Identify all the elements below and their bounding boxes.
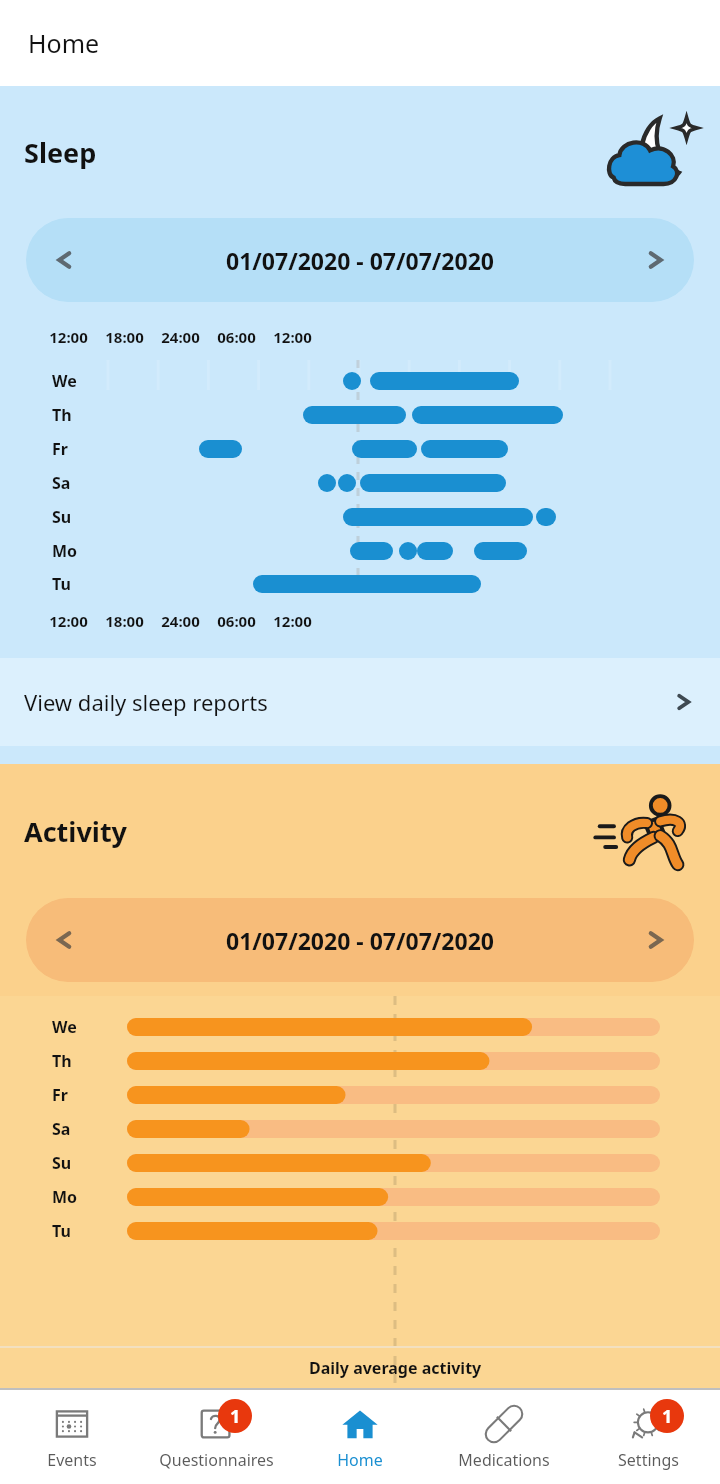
staticText: Mo: [52, 540, 78, 562]
staticText: Daily average activity: [309, 1357, 482, 1379]
staticText: Home: [337, 1449, 383, 1471]
staticText: 06:00: [217, 611, 256, 631]
staticText: Home: [28, 26, 100, 60]
staticText: 1: [662, 1404, 673, 1429]
staticText: Sleep: [24, 134, 97, 171]
staticText: Sa: [52, 472, 71, 494]
button[interactable]: Previous week: [26, 218, 102, 302]
staticText: 18:00: [105, 327, 144, 347]
staticText: Fr: [52, 1084, 68, 1106]
staticText: 18:00: [105, 611, 144, 631]
button[interactable]: Events: [0, 1390, 144, 1484]
staticText: Tu: [52, 573, 71, 595]
button[interactable]: Previous week: [26, 898, 102, 982]
staticText: 24:00: [161, 327, 200, 347]
button[interactable]: Home: [288, 1390, 432, 1484]
staticText: Activity: [24, 813, 128, 850]
staticText: 12:00: [273, 327, 312, 347]
staticText: Events: [47, 1449, 97, 1471]
staticText: Tu: [52, 1220, 71, 1242]
staticText: Su: [52, 1152, 72, 1174]
staticText: 12:00: [273, 611, 312, 631]
staticText: We: [52, 370, 77, 392]
button[interactable]: Previous week: [26, 218, 694, 302]
staticText: 24:00: [161, 611, 200, 631]
staticText: View daily sleep reports: [24, 687, 268, 717]
staticText: 12:00: [49, 611, 88, 631]
staticText: Medications: [458, 1449, 550, 1471]
button[interactable]: Next week: [618, 218, 694, 302]
staticText: Mo: [52, 1186, 78, 1208]
staticText: 1: [230, 1404, 241, 1429]
staticText: 01/07/2020 - 07/07/2020: [226, 245, 494, 276]
button[interactable]: Medications: [432, 1390, 576, 1484]
staticText: 06:00: [217, 327, 256, 347]
staticText: We: [52, 1016, 77, 1038]
staticText: Settings: [618, 1449, 679, 1471]
staticText: Questionnaires: [159, 1449, 274, 1471]
staticText: Th: [52, 1050, 72, 1072]
button[interactable]: 1: [576, 1390, 720, 1484]
button[interactable]: Previous week: [26, 898, 694, 982]
button[interactable]: Next week: [618, 898, 694, 982]
staticText: 12:00: [49, 327, 88, 347]
staticText: Fr: [52, 438, 68, 460]
staticText: Sa: [52, 1118, 71, 1140]
staticText: Su: [52, 506, 72, 528]
staticText: Th: [52, 404, 72, 426]
button[interactable]: 1: [144, 1390, 288, 1484]
button[interactable]: View daily sleep reports: [0, 658, 720, 746]
staticText: 01/07/2020 - 07/07/2020: [226, 925, 494, 956]
